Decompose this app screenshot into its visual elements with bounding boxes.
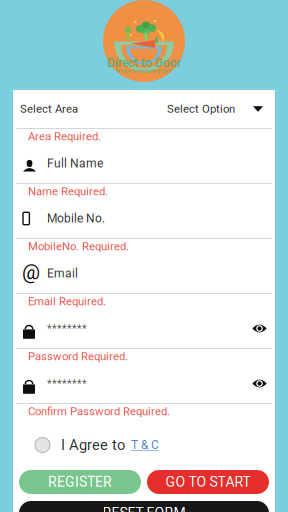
button[interactable]: ********: [16, 364, 272, 403]
button[interactable]: REGISTER: [19, 470, 141, 494]
staticText: where friendship grows: [116, 68, 172, 74]
staticText: Full Name: [47, 156, 103, 171]
staticText: Email Required.: [28, 295, 106, 308]
button[interactable]: GO TO START: [147, 470, 269, 494]
staticText: Confirm Password Required.: [28, 405, 170, 418]
staticText: REGISTER: [48, 474, 112, 490]
staticText: Mobile No.: [47, 211, 105, 226]
button[interactable]: Mobile No.: [16, 199, 272, 238]
button[interactable]: RESET FORM: [19, 501, 269, 512]
button[interactable]: Select Area: [16, 90, 272, 128]
staticText: T & C: [131, 438, 159, 452]
button[interactable]: Full Name: [16, 144, 272, 183]
button[interactable]: ********: [16, 309, 272, 348]
staticText: ********: [47, 377, 87, 390]
staticText: Direct to Door: [107, 56, 181, 70]
button[interactable]: @: [16, 254, 272, 293]
button[interactable]: I Agree to: [16, 429, 272, 461]
staticText: I Agree to: [61, 436, 125, 454]
staticText: ********: [47, 322, 87, 335]
staticText: Area Required.: [28, 130, 101, 143]
staticText: Name Required.: [28, 185, 108, 198]
staticText: Select Area: [20, 102, 78, 116]
staticText: Email: [47, 266, 78, 281]
staticText: MobileNo. Required.: [28, 240, 129, 253]
staticText: Select Option: [167, 102, 235, 116]
staticText: GO TO START: [165, 474, 250, 490]
staticText: @: [22, 261, 40, 284]
staticText: Password Required.: [28, 350, 128, 363]
staticText: RESET FORM: [102, 505, 185, 512]
